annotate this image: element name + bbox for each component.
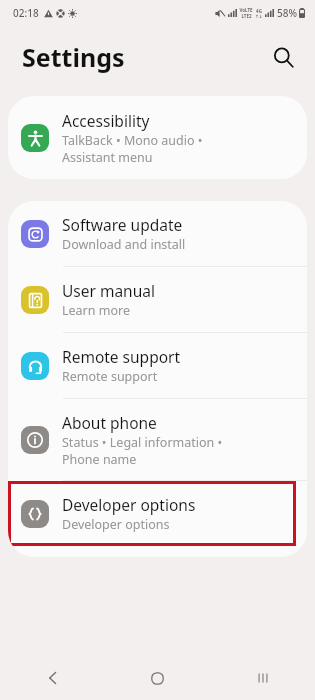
button[interactable]: About phone xyxy=(8,399,307,480)
staticText: VoLTE xyxy=(239,7,253,13)
button[interactable]: Back xyxy=(0,656,105,700)
staticText: Remote support xyxy=(62,368,158,385)
staticText: Status • Legal information • Phone name xyxy=(62,434,223,467)
staticText: Download and install xyxy=(62,236,186,253)
button[interactable]: Developer options xyxy=(8,481,307,546)
button[interactable]: Home xyxy=(105,656,210,700)
button[interactable]: User manual xyxy=(8,267,307,332)
staticText: Software update xyxy=(62,214,183,235)
staticText: Developer options xyxy=(62,516,170,533)
staticText: LTE2 xyxy=(241,13,252,19)
staticText: ↑↓ xyxy=(255,14,263,19)
button[interactable]: Software update xyxy=(8,201,307,266)
staticText: 02:18 xyxy=(13,6,39,20)
button[interactable]: Accessibility xyxy=(8,96,307,179)
staticText: 4G xyxy=(256,8,262,14)
staticText: Developer options xyxy=(62,494,196,515)
button[interactable]: Search xyxy=(263,37,303,77)
button[interactable]: Recent apps xyxy=(210,656,315,700)
staticText: Remote support xyxy=(62,346,181,367)
staticText: 58% xyxy=(277,6,297,20)
staticText: Accessibility xyxy=(62,110,150,131)
staticText: Learn more xyxy=(62,302,130,319)
staticText: About phone xyxy=(62,412,157,433)
button[interactable]: Remote support xyxy=(8,333,307,398)
staticText: Settings xyxy=(22,40,125,74)
staticText: User manual xyxy=(62,280,155,301)
staticText: TalkBack • Mono audio • Assistant menu xyxy=(62,132,203,165)
